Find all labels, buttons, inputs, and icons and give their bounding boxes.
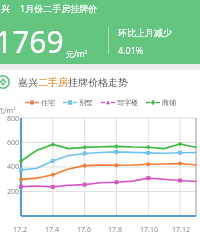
- staticText: 住宅: [41, 98, 55, 107]
- other: 房源图标: [0, 75, 10, 89]
- button[interactable]: 房源图标: [0, 70, 200, 94]
- button[interactable]: 写字楼: [101, 98, 138, 107]
- staticText: 写字楼: [117, 98, 138, 107]
- staticText: 兴: [1, 3, 10, 14]
- button[interactable]: 商铺: [146, 98, 176, 107]
- staticText: 1月份二手房挂牌价: [20, 2, 98, 14]
- staticText: 嘉兴: [18, 76, 38, 89]
- button[interactable]: 别墅: [63, 98, 93, 107]
- button[interactable]: 住宅: [25, 98, 55, 107]
- staticText: 17.6: [77, 225, 91, 235]
- staticText: 17.10: [140, 225, 158, 235]
- staticText: 挂牌价格走势: [68, 76, 128, 89]
- staticText: 17.4: [45, 225, 59, 235]
- staticText: 17.8: [108, 225, 122, 235]
- staticText: 600: [7, 138, 20, 148]
- staticText: 4.01%: [118, 44, 144, 56]
- staticText: 商铺: [162, 98, 176, 107]
- staticText: 1769: [0, 21, 64, 62]
- staticText: 17.2: [13, 225, 27, 235]
- staticText: 别墅: [79, 98, 93, 107]
- staticText: 环比上月减少: [118, 27, 172, 38]
- staticText: 200: [7, 187, 20, 197]
- staticText: 400: [7, 162, 20, 172]
- staticText: 二手房: [38, 76, 68, 89]
- staticText: 800: [7, 114, 20, 124]
- staticText: 17.12: [172, 225, 190, 235]
- staticText: 元/m²: [66, 48, 88, 59]
- staticText: 元/m²: [0, 106, 16, 116]
- button[interactable]: 兴: [0, 0, 200, 64]
